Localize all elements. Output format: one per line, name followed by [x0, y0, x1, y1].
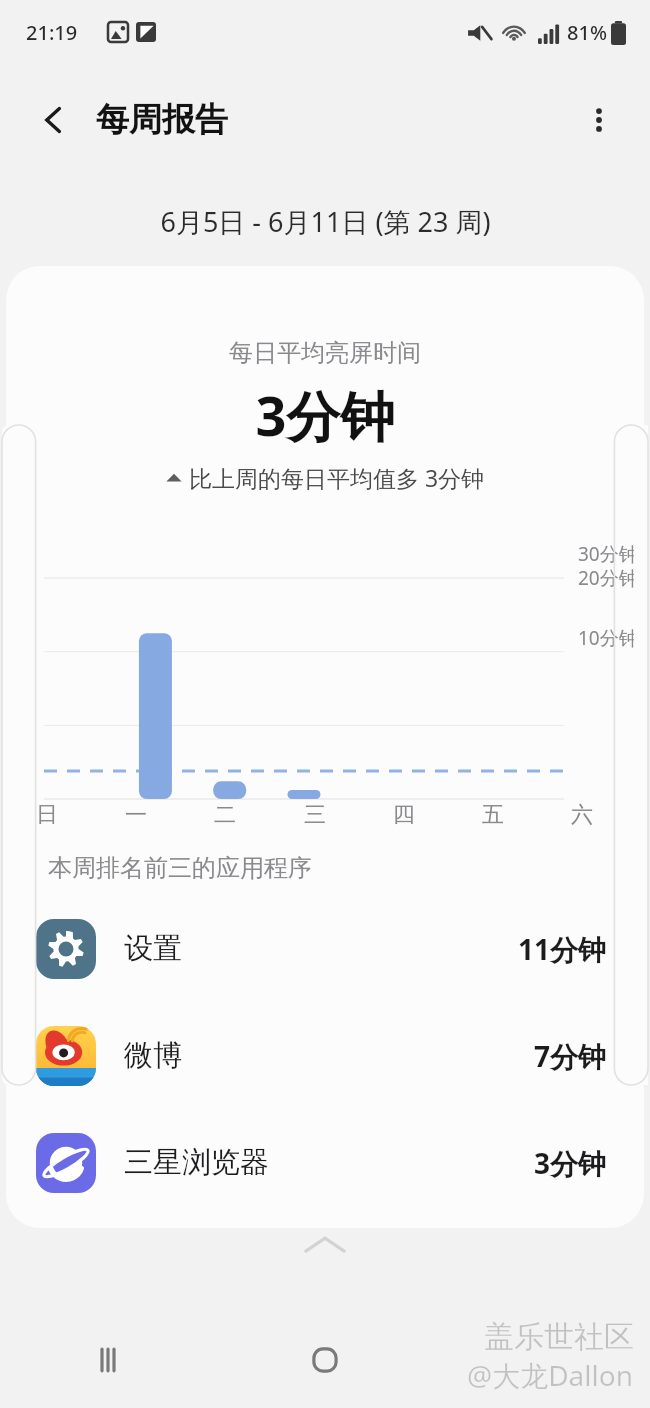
staticText: 三	[304, 801, 326, 829]
button[interactable]: Back	[28, 94, 80, 146]
staticText: 3分钟	[6, 378, 644, 452]
staticText: 比上周的每日平均值多 3分钟	[183, 462, 485, 493]
button[interactable]: 三星浏览器	[6, 1109, 644, 1216]
staticText: 本周排名前三的应用程序	[48, 853, 312, 883]
staticText: 81%	[567, 19, 607, 46]
staticText: 11分钟	[518, 930, 607, 968]
staticText: 20分钟	[578, 565, 638, 591]
button[interactable]	[634, 425, 648, 1085]
staticText: 30分钟	[578, 541, 638, 565]
button[interactable]: Recent apps	[0, 1312, 216, 1408]
button[interactable]: 设置	[6, 895, 644, 1002]
button[interactable]	[2, 425, 16, 1085]
staticText: 日	[36, 801, 58, 829]
staticText: 7分钟	[534, 1037, 607, 1075]
staticText: 3分钟	[534, 1144, 607, 1182]
staticText: 六	[571, 801, 593, 829]
staticText: 6月5日 - 6月11日 (第 23 周)	[160, 203, 491, 240]
staticText: 盖乐世社区	[484, 1318, 634, 1356]
staticText: 10分钟	[578, 625, 638, 651]
staticText: 五	[482, 801, 504, 829]
staticText: 21:19	[26, 19, 78, 46]
staticText: 微博	[124, 1037, 534, 1074]
staticText: 每周报告	[96, 99, 228, 141]
staticText: 每日平均亮屏时间	[6, 338, 644, 368]
staticText: 三星浏览器	[124, 1144, 534, 1181]
staticText: @大龙Dallon	[467, 1356, 634, 1394]
button[interactable]: Back	[434, 1312, 650, 1408]
button[interactable]: 6月5日 - 6月11日 (第 23 周)	[0, 176, 650, 266]
staticText: 设置	[124, 930, 518, 967]
button[interactable]: Home	[217, 1312, 433, 1408]
staticText: 一	[125, 801, 147, 829]
button[interactable]: More options	[572, 93, 626, 147]
staticText: 二	[214, 801, 236, 829]
staticText: 四	[393, 801, 415, 829]
button[interactable]: 微博	[6, 1002, 644, 1109]
